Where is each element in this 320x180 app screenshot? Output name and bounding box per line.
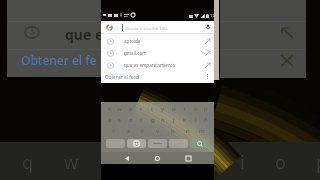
staticText: que es emparejamiento [124, 62, 176, 68]
button[interactable]: l [191, 115, 200, 125]
staticText: gmail.com [124, 50, 147, 56]
staticText: q [108, 105, 112, 113]
button[interactable]: q [105, 104, 114, 114]
staticText: w [64, 150, 79, 175]
staticText: p [204, 105, 208, 113]
staticText: o [194, 105, 198, 113]
button[interactable]: Symbols [106, 139, 125, 148]
button[interactable]: Back [121, 153, 132, 164]
staticText: g [151, 116, 155, 124]
staticText: o [275, 150, 286, 175]
staticText: h [161, 116, 165, 124]
button[interactable]: z [109, 126, 118, 136]
button[interactable]: c [138, 126, 147, 136]
button[interactable]: ñ [201, 115, 210, 125]
staticText: c [141, 127, 144, 135]
button[interactable]: More options [207, 74, 208, 79]
button[interactable]: d [126, 115, 135, 125]
button[interactable]: Fill query [205, 63, 210, 68]
button[interactable]: g [148, 115, 157, 125]
button[interactable]: h [158, 115, 167, 125]
staticText: m [199, 127, 205, 135]
staticText: w [117, 105, 122, 113]
button[interactable]: j [169, 115, 178, 125]
staticText: Obtener el fe [21, 52, 97, 68]
button[interactable]: que es emparejamiento [101, 59, 214, 71]
button[interactable]: Recent apps [183, 153, 194, 164]
button[interactable]: p [201, 104, 210, 114]
button[interactable]: Period [169, 139, 188, 148]
button[interactable]: gmail.com [101, 47, 214, 59]
staticText: e [129, 105, 133, 113]
staticText: l [195, 116, 197, 124]
button[interactable]: k [180, 115, 189, 125]
button[interactable]: f [137, 115, 146, 125]
button[interactable]: Home [152, 153, 163, 164]
staticText: ñ [204, 116, 208, 124]
staticText: i [240, 150, 245, 175]
button[interactable]: t [148, 104, 157, 114]
staticText: y [161, 105, 165, 113]
button[interactable]: w [115, 104, 124, 114]
button[interactable]: o [191, 104, 200, 114]
button[interactable]: y [158, 104, 167, 114]
button[interactable]: n [183, 126, 192, 136]
button[interactable]: Space [148, 139, 167, 148]
button[interactable]: Voice search [204, 23, 212, 31]
staticText: v [156, 127, 160, 135]
button[interactable]: s [115, 115, 124, 125]
button[interactable]: r [137, 104, 146, 114]
button[interactable]: Obtener el feed [105, 74, 139, 80]
button[interactable]: Buscar o escribir URL [101, 21, 214, 33]
button[interactable]: a [105, 115, 114, 125]
staticText: n [186, 127, 190, 135]
button[interactable]: Search [190, 139, 209, 148]
button[interactable]: u [169, 104, 178, 114]
staticText: k [183, 116, 187, 124]
staticText: r [140, 105, 143, 113]
button[interactable]: x [124, 126, 133, 136]
button[interactable]: i [180, 104, 189, 114]
button[interactable]: e [126, 104, 135, 114]
staticText: t [151, 105, 154, 113]
staticText: q [22, 150, 34, 175]
button[interactable]: Fill query [205, 51, 210, 56]
staticText: p [316, 150, 320, 175]
staticText: a [108, 116, 112, 124]
staticText: s [118, 116, 121, 124]
staticText: f [140, 116, 143, 124]
staticText: u [172, 105, 176, 113]
button[interactable]: aptoide [101, 35, 214, 47]
staticText: e [109, 150, 120, 175]
button[interactable]: Fill query [205, 39, 210, 44]
button[interactable]: m [197, 126, 206, 136]
staticText: que e [65, 25, 104, 44]
staticText: j [173, 116, 175, 124]
staticText: d [129, 116, 133, 124]
button[interactable]: Emoji [127, 139, 146, 148]
staticText: Buscar o escribir URL [125, 25, 168, 31]
staticText: aptoide [124, 38, 141, 44]
button[interactable]: v [153, 126, 162, 136]
staticText: z [112, 127, 115, 135]
staticText: 12 [210, 13, 215, 19]
staticText: i [184, 105, 186, 113]
staticText: x [127, 127, 131, 135]
staticText: b [171, 127, 175, 135]
button[interactable]: b [168, 126, 177, 136]
